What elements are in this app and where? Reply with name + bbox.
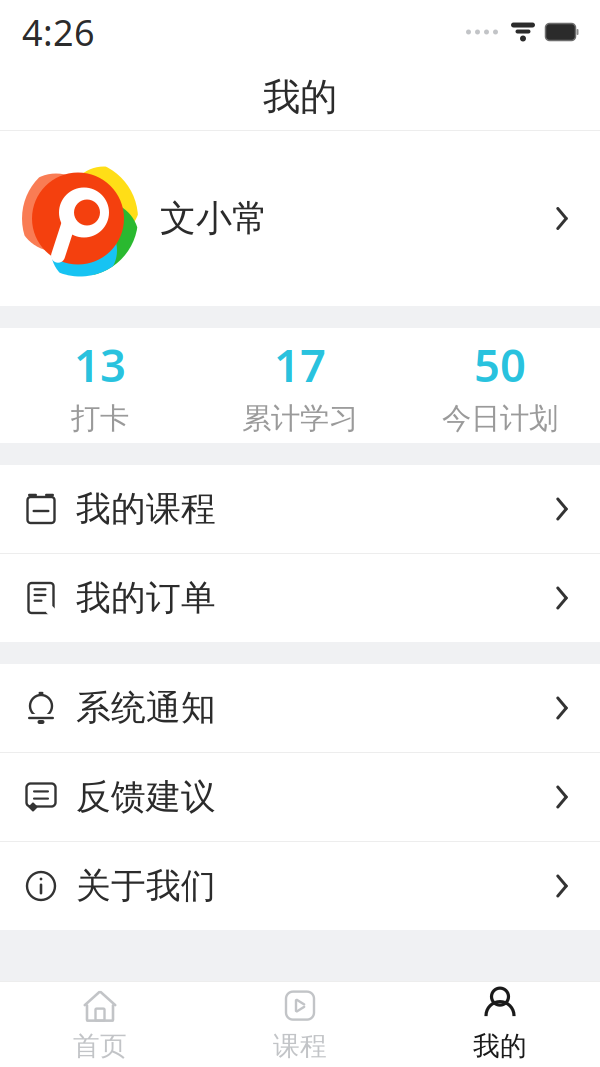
staticText: 累计学习 [242,401,358,437]
staticText: 13 [74,334,126,395]
button[interactable]: 文小常 [0,131,600,306]
staticText: 打卡 [71,401,129,437]
staticText: 我的课程 [76,488,216,530]
button[interactable]: 系统通知 [0,664,600,752]
button[interactable]: 我的 [400,982,600,1067]
staticText: 今日计划 [442,401,558,437]
staticText: 关于我们 [76,865,216,907]
staticText: 反馈建议 [76,776,216,818]
button[interactable]: 关于我们 [0,842,600,930]
staticText: 我的 [263,74,337,120]
staticText: 17 [274,334,326,395]
staticText: 首页 [73,1030,127,1062]
staticText: 50 [474,334,526,395]
staticText: 课程 [273,1030,327,1062]
button[interactable]: 我的课程 [0,465,600,553]
staticText: 我的 [473,1030,527,1062]
staticText: 文小常 [160,196,268,241]
button[interactable]: 首页 [0,982,200,1067]
button[interactable]: 我的订单 [0,554,600,642]
button[interactable]: 反馈建议 [0,753,600,841]
staticText: 4:26 [22,8,95,56]
staticText: 系统通知 [76,687,216,729]
button[interactable]: 课程 [200,982,400,1067]
staticText: 我的订单 [76,577,216,619]
